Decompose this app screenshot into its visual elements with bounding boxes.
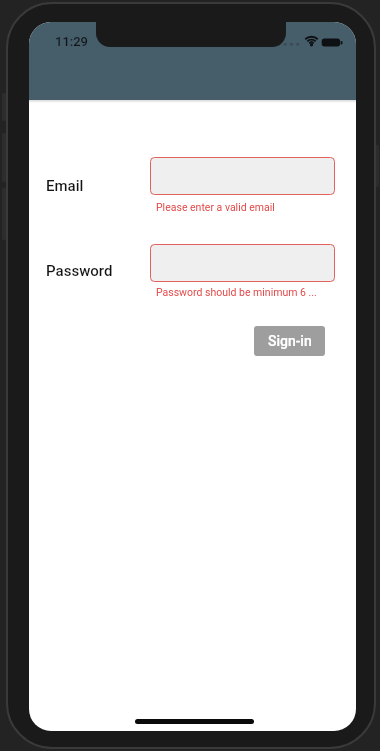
staticText: Password [46,262,113,280]
staticText: Email [46,177,84,195]
staticText: Please enter a valid email [156,201,275,213]
button[interactable] [150,244,335,282]
button[interactable] [150,157,335,195]
staticText: Sign-in [268,333,312,349]
button[interactable]: Sign-in [254,326,325,356]
staticText: Password should be minimum 6 ... [156,286,317,298]
staticText: 11:29 [55,34,89,49]
